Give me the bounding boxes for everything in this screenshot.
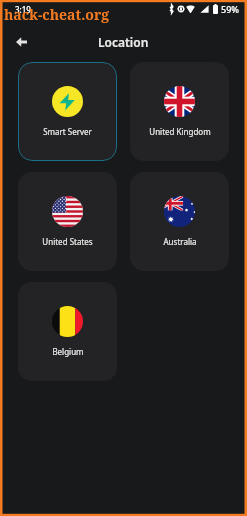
staticText: 3:19 <box>15 4 31 15</box>
button[interactable]: Smart Server <box>18 62 117 161</box>
staticText: Smart Server <box>43 126 92 137</box>
staticText: United Kingdom <box>149 126 211 137</box>
button[interactable]: United States <box>18 172 117 271</box>
staticText: Australia <box>163 236 197 247</box>
button[interactable]: Belgium <box>18 282 117 381</box>
staticText: hack-cheat.org <box>4 5 110 24</box>
button[interactable]: Back <box>11 32 31 52</box>
staticText: 59% <box>221 3 239 15</box>
button[interactable]: Australia <box>130 172 229 271</box>
staticText: Location <box>98 34 149 50</box>
button[interactable]: United Kingdom <box>130 62 229 161</box>
staticText: Belgium <box>52 346 84 357</box>
staticText: United States <box>42 236 93 247</box>
